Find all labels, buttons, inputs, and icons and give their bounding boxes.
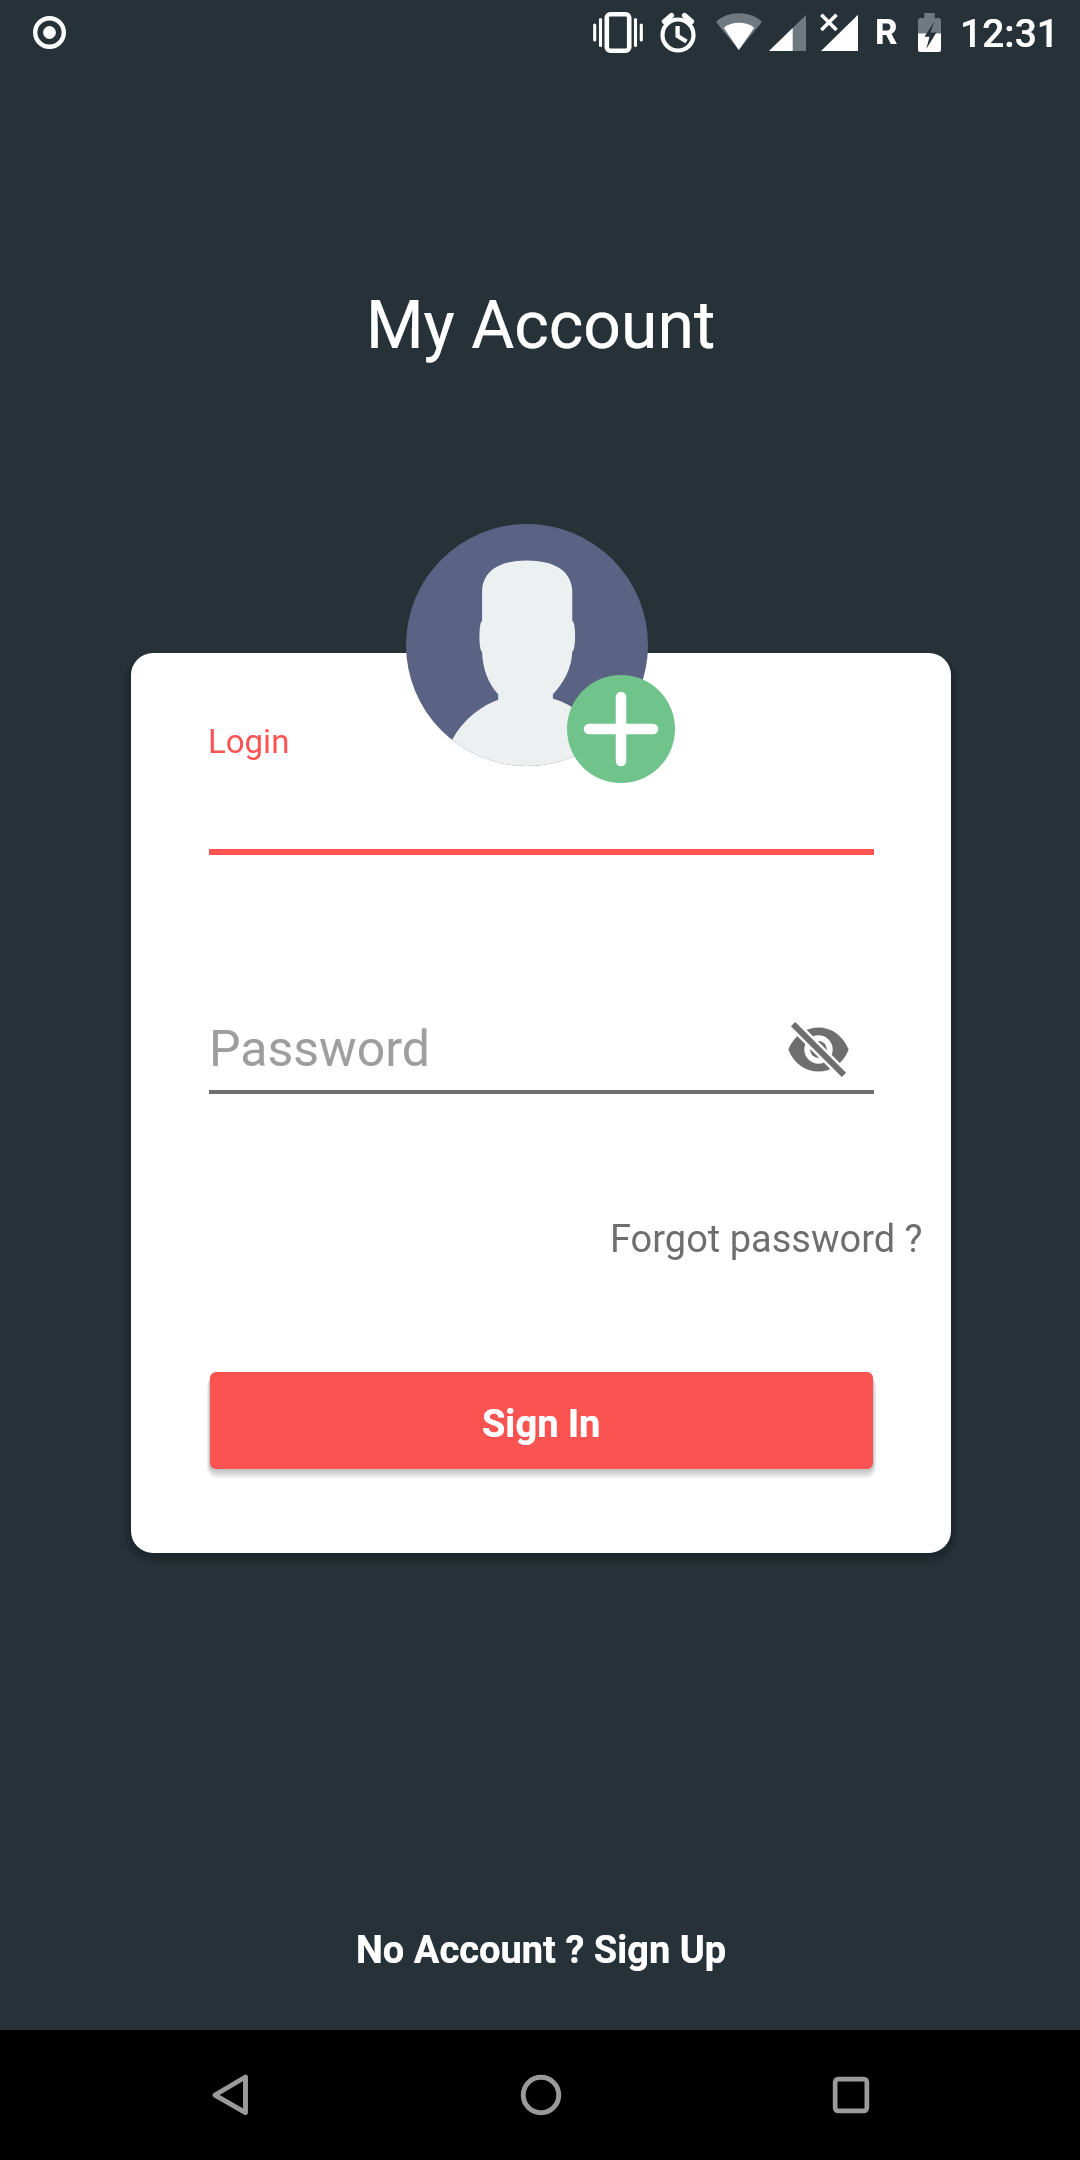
button[interactable]: Show password <box>773 1004 864 1095</box>
staticText: Sign In <box>482 1402 601 1447</box>
button[interactable]: Sign In <box>210 1372 873 1469</box>
staticText: Password <box>209 1020 430 1079</box>
button[interactable]: Back <box>175 2040 285 2150</box>
staticText: No Account ? Sign Up <box>356 1928 727 1973</box>
button[interactable]: Recent apps <box>796 2040 906 2150</box>
staticText: R <box>875 12 898 53</box>
staticText: Forgot password ? <box>610 1217 923 1262</box>
staticText: 12:31 <box>960 11 1060 57</box>
button[interactable]: No Account ? Sign Up <box>356 1928 727 1973</box>
button[interactable]: Add profile photo <box>567 675 675 783</box>
button[interactable]: Home <box>486 2040 596 2150</box>
staticText: Login <box>208 722 290 761</box>
button[interactable]: Forgot password ? <box>610 1217 923 1262</box>
staticText: My Account <box>366 287 716 364</box>
